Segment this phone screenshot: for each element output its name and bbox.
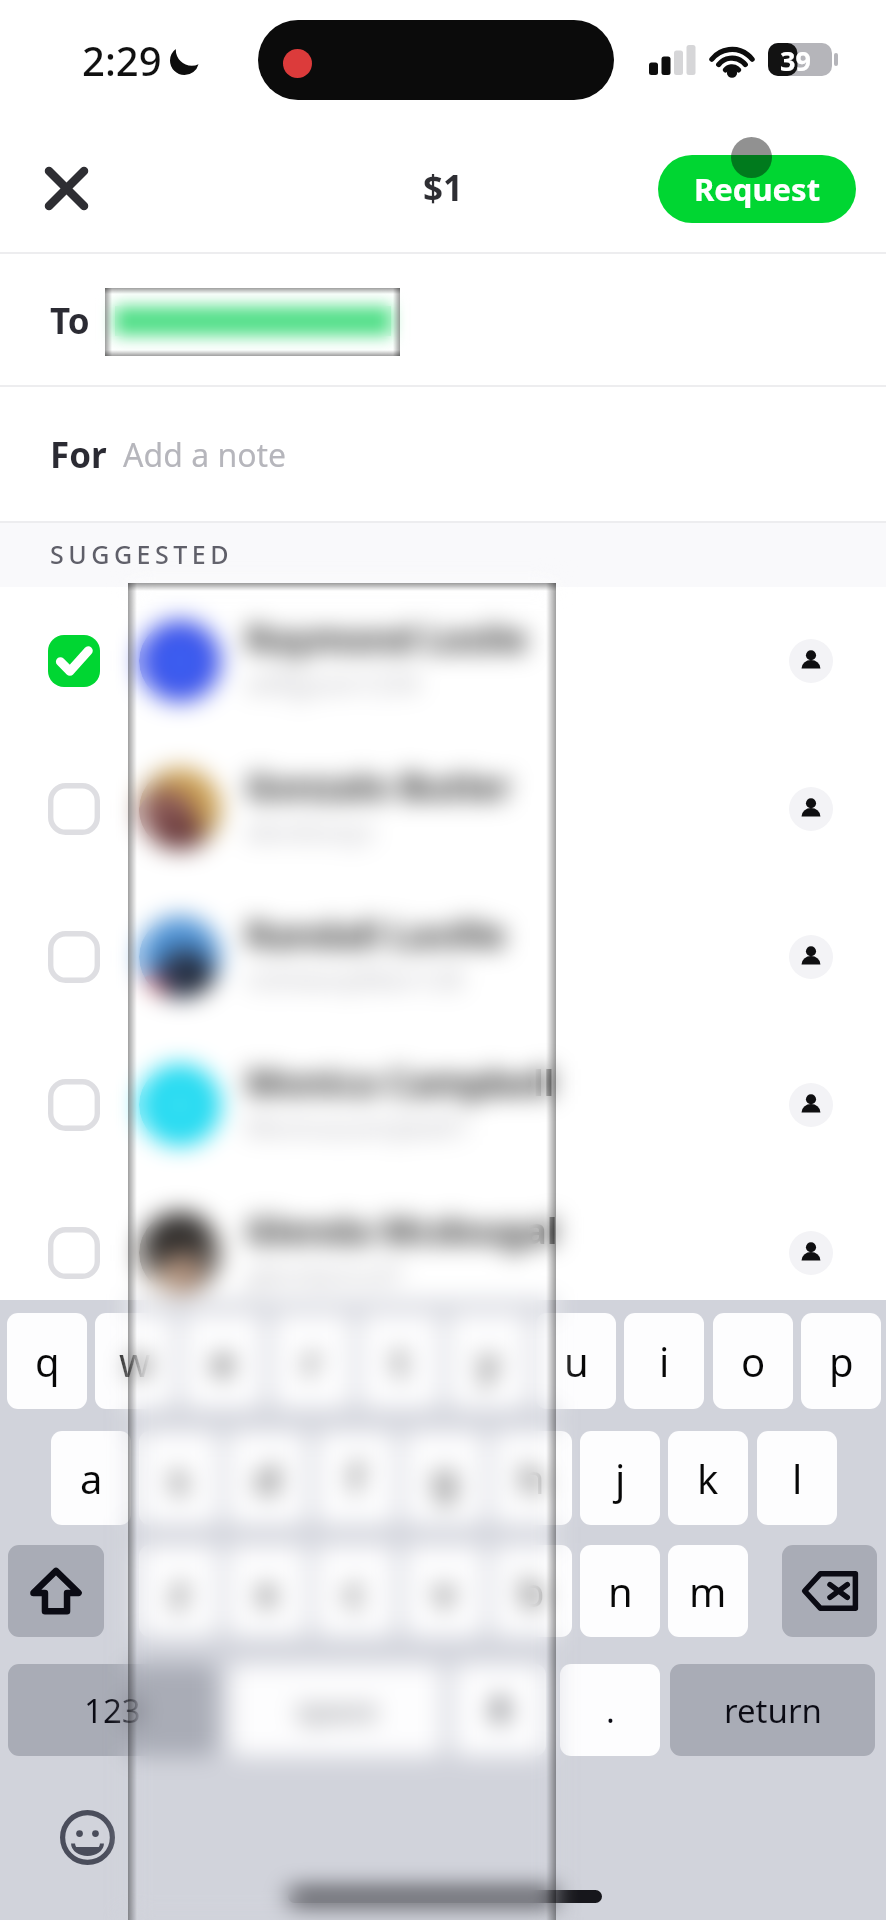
button[interactable]: k: [668, 1431, 748, 1525]
button[interactable]: Backspace: [782, 1545, 877, 1637]
button[interactable]: Monica Campbell: [0, 1031, 886, 1179]
button[interactable]: z: [139, 1545, 219, 1637]
button[interactable]: Shift: [8, 1545, 104, 1637]
button[interactable]: o: [713, 1313, 793, 1409]
button[interactable]: Contact profile: [789, 1231, 833, 1275]
button[interactable]: Shift: [8, 1545, 104, 1637]
button[interactable]: o: [713, 1313, 793, 1409]
button[interactable]: For: [0, 387, 886, 523]
button[interactable]: g: [404, 1431, 484, 1525]
button[interactable]: h: [492, 1431, 572, 1525]
button[interactable]: Period: [560, 1664, 660, 1756]
button[interactable]: y: [448, 1313, 528, 1409]
button[interactable]: q: [7, 1313, 87, 1409]
button[interactable]: s: [139, 1431, 219, 1525]
button[interactable]: Space: [230, 1664, 442, 1756]
button[interactable]: Close: [28, 150, 104, 226]
button[interactable]: w: [95, 1313, 175, 1409]
button[interactable]: Contact profile: [789, 787, 833, 831]
button[interactable]: Period: [560, 1664, 660, 1756]
button[interactable]: n: [580, 1545, 660, 1637]
button[interactable]: Dictation: [453, 1664, 546, 1756]
button[interactable]: t: [360, 1313, 440, 1409]
button[interactable]: Gonzalo Butler: [0, 735, 886, 883]
button[interactable]: z: [139, 1545, 219, 1637]
button[interactable]: Glenda Mcdougal: [0, 1179, 886, 1327]
button[interactable]: b: [492, 1545, 572, 1637]
button[interactable]: Raymond Leslie: [0, 587, 886, 735]
button[interactable]: To: [0, 254, 886, 387]
button[interactable]: c: [315, 1545, 395, 1637]
button[interactable]: c: [315, 1545, 395, 1637]
button[interactable]: v: [404, 1545, 484, 1637]
button[interactable]: For: [0, 387, 886, 523]
button[interactable]: Raymond Leslie: [0, 587, 886, 735]
button[interactable]: w: [95, 1313, 175, 1409]
button[interactable]: d: [227, 1431, 307, 1525]
button[interactable]: n: [580, 1545, 660, 1637]
button[interactable]: v: [404, 1545, 484, 1637]
button[interactable]: Gonzalo Butler: [0, 735, 886, 883]
button[interactable]: Numbers: [8, 1664, 216, 1756]
button[interactable]: a: [51, 1431, 131, 1525]
button[interactable]: t: [360, 1313, 440, 1409]
button[interactable]: d: [227, 1431, 307, 1525]
button[interactable]: p: [801, 1313, 881, 1409]
button[interactable]: f: [316, 1431, 396, 1525]
button[interactable]: b: [492, 1545, 572, 1637]
button[interactable]: Close: [28, 150, 104, 226]
button[interactable]: Space: [230, 1664, 442, 1756]
button[interactable]: u: [536, 1313, 616, 1409]
button[interactable]: To: [0, 254, 886, 387]
button[interactable]: Close: [28, 150, 104, 226]
button[interactable]: Monica Campbell: [0, 1031, 886, 1179]
button[interactable]: Contact profile: [789, 1083, 833, 1127]
button[interactable]: Emoji keyboard: [54, 1804, 121, 1871]
button[interactable]: Emoji keyboard: [54, 1804, 121, 1871]
button[interactable]: q: [7, 1313, 87, 1409]
button[interactable]: k: [668, 1431, 748, 1525]
button[interactable]: Request: [658, 155, 856, 223]
button[interactable]: Gonzalo Butler: [0, 735, 886, 883]
button[interactable]: p: [801, 1313, 881, 1409]
button[interactable]: i: [624, 1313, 704, 1409]
button[interactable]: To: [0, 254, 886, 387]
button[interactable]: Numbers: [8, 1664, 216, 1756]
button[interactable]: Request: [658, 155, 856, 223]
button[interactable]: Backspace: [782, 1545, 877, 1637]
button[interactable]: y: [448, 1313, 528, 1409]
button[interactable]: Numbers: [8, 1664, 216, 1756]
button[interactable]: Randall Laville: [0, 883, 886, 1031]
button[interactable]: j: [580, 1431, 660, 1525]
button[interactable]: b: [492, 1545, 572, 1637]
button[interactable]: Contact profile: [789, 1083, 833, 1127]
button[interactable]: Contact profile: [789, 935, 833, 979]
button[interactable]: j: [580, 1431, 660, 1525]
button[interactable]: l: [757, 1431, 837, 1525]
button[interactable]: For: [0, 387, 886, 523]
button[interactable]: h: [492, 1431, 572, 1525]
button[interactable]: e: [183, 1313, 263, 1409]
button[interactable]: g: [404, 1431, 484, 1525]
button[interactable]: f: [316, 1431, 396, 1525]
button[interactable]: Shift: [8, 1545, 104, 1637]
button[interactable]: a: [51, 1431, 131, 1525]
button[interactable]: Emoji keyboard: [54, 1804, 121, 1871]
button[interactable]: m: [668, 1545, 748, 1637]
button[interactable]: d: [227, 1431, 307, 1525]
button[interactable]: p: [801, 1313, 881, 1409]
button[interactable]: Dictation: [453, 1664, 546, 1756]
button[interactable]: n: [580, 1545, 660, 1637]
button[interactable]: j: [580, 1431, 660, 1525]
button[interactable]: Contact profile: [789, 1231, 833, 1275]
button[interactable]: Contact profile: [789, 639, 833, 683]
button[interactable]: u: [536, 1313, 616, 1409]
button[interactable]: i: [624, 1313, 704, 1409]
button[interactable]: a: [51, 1431, 131, 1525]
button[interactable]: Glenda Mcdougal: [0, 1179, 886, 1327]
button[interactable]: Glenda Mcdougal: [0, 1179, 886, 1327]
button[interactable]: Contact profile: [789, 787, 833, 831]
button[interactable]: x: [227, 1545, 307, 1637]
button[interactable]: f: [316, 1431, 396, 1525]
button[interactable]: Return: [670, 1664, 875, 1756]
